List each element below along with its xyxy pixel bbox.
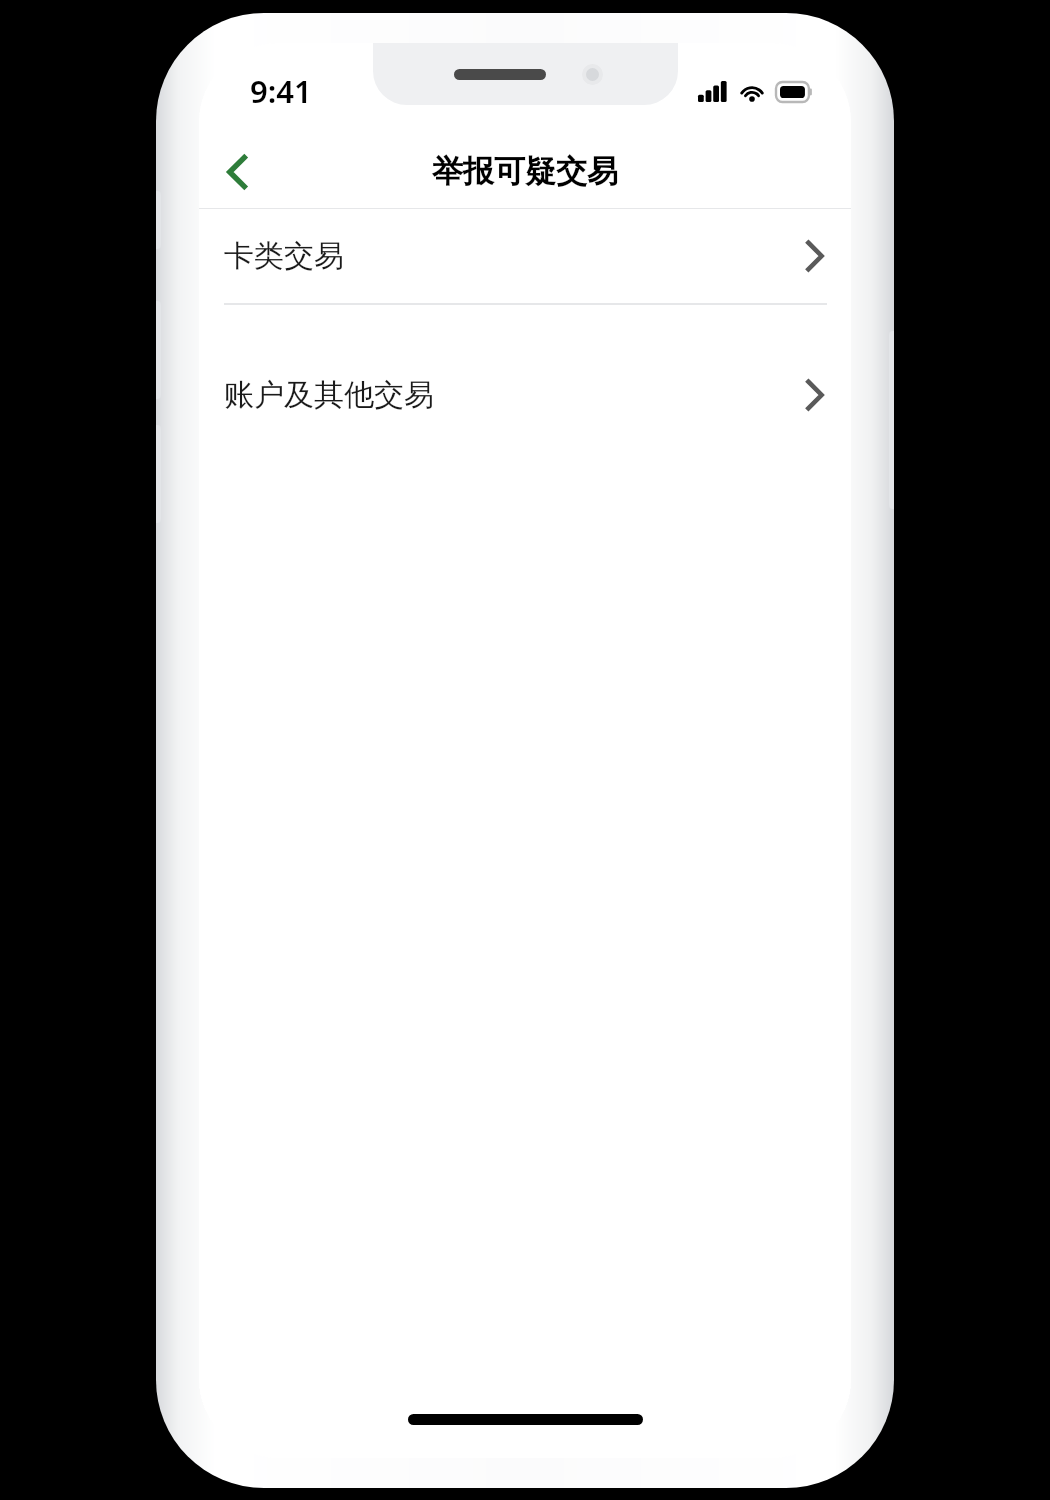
button[interactable]: 账户及其他交易: [199, 349, 851, 441]
button[interactable]: 卡类交易: [199, 209, 851, 303]
staticText: 9:41: [250, 70, 312, 112]
staticText: 账户及其他交易: [224, 376, 804, 414]
staticText: 卡类交易: [224, 237, 804, 275]
staticText: 举报可疑交易: [432, 152, 618, 191]
button[interactable]: Back: [199, 135, 275, 208]
